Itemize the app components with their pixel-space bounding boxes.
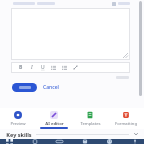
button[interactable]: AI editor	[36, 108, 72, 129]
button[interactable]	[12, 83, 37, 92]
button[interactable]: I	[26, 62, 37, 73]
staticText: Key skills	[6, 131, 32, 138]
button[interactable]: Key skills	[6, 129, 139, 139]
button[interactable]: Clipboard	[30, 139, 39, 144]
button[interactable]: Keyboard menu	[5, 139, 14, 144]
button[interactable]: Voice input	[130, 139, 139, 144]
staticText: I	[31, 64, 33, 71]
staticText: Preview	[10, 121, 26, 127]
staticText: AI editor	[45, 121, 64, 127]
button[interactable]: Formatting	[108, 108, 144, 129]
button[interactable]: Cancel	[42, 83, 60, 92]
button[interactable]: Templates	[72, 108, 108, 129]
staticText: U	[41, 64, 45, 71]
staticText: Templates	[80, 121, 101, 127]
staticText: Formatting	[115, 121, 137, 127]
button[interactable]: List	[48, 62, 59, 73]
button[interactable]: Preview	[0, 108, 36, 129]
button[interactable]: U	[37, 62, 48, 73]
button[interactable]: GIF	[55, 139, 64, 144]
button[interactable]: Emoji	[105, 139, 114, 144]
staticText: B	[19, 64, 23, 71]
button[interactable]: List	[59, 62, 70, 73]
button[interactable]: Stickers	[80, 139, 89, 144]
button[interactable]: B	[15, 62, 26, 73]
button[interactable]: Insert link	[70, 62, 81, 73]
staticText: Cancel	[43, 84, 59, 91]
